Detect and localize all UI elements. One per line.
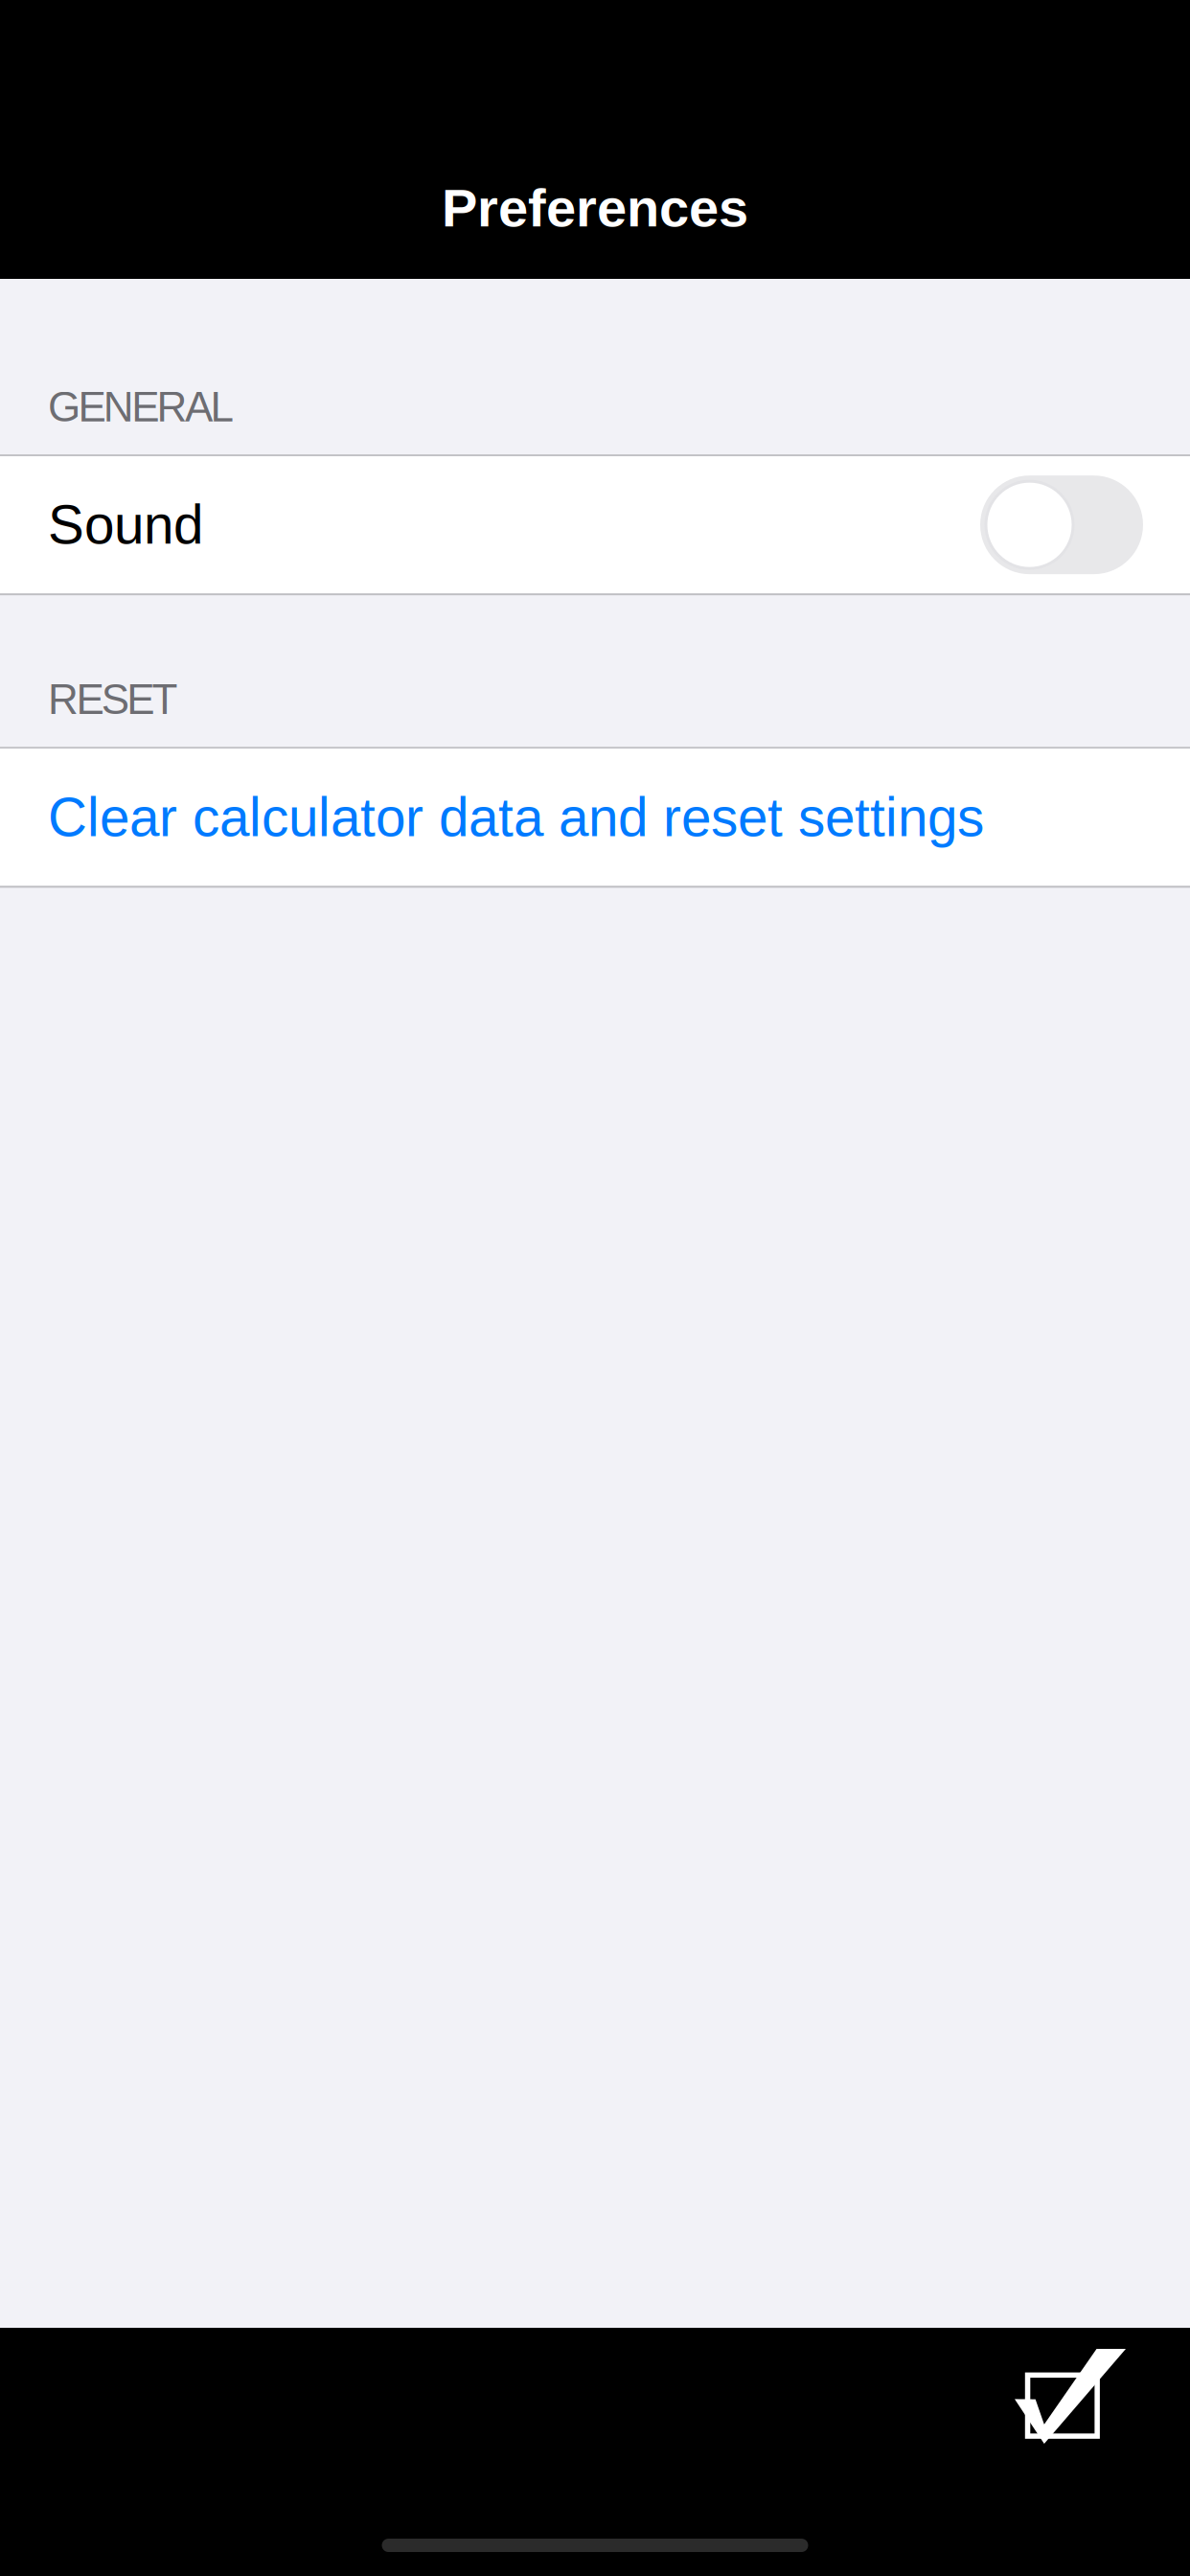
- staticText: GENERAL: [48, 383, 233, 430]
- staticText: Preferences: [442, 178, 748, 238]
- staticText: Sound: [48, 495, 203, 555]
- button[interactable]: Sound: [0, 456, 1190, 593]
- button[interactable]: Done: [992, 2328, 1190, 2455]
- button[interactable]: Clear calculator data and reset settings: [0, 749, 1190, 886]
- staticText: RESET: [48, 676, 178, 723]
- staticText: Clear calculator data and reset settings: [48, 787, 984, 848]
